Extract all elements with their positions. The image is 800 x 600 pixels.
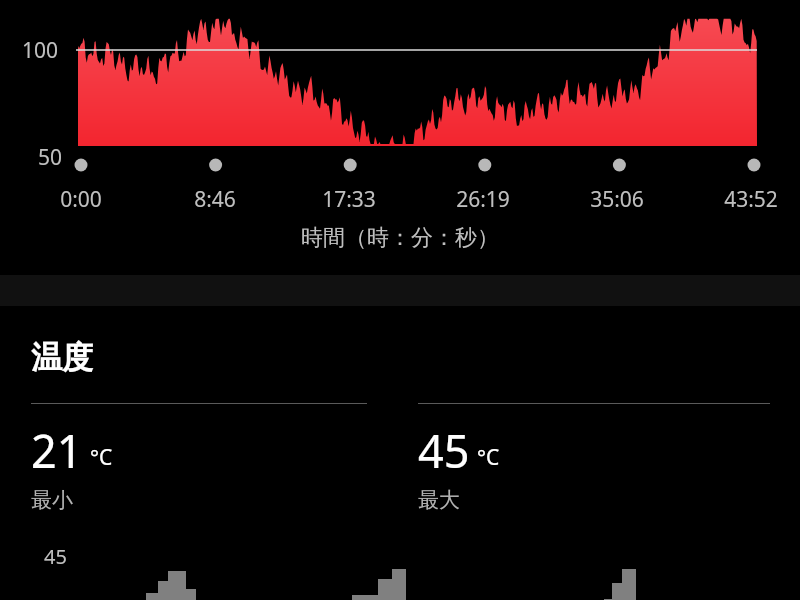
button[interactable]: 温度	[0, 338, 800, 377]
staticText: 50	[38, 143, 63, 172]
staticText: 43:52	[701, 185, 800, 214]
staticText: 45	[44, 543, 67, 570]
staticText: 0:00	[31, 185, 131, 214]
staticText: 温度	[31, 338, 93, 377]
staticText: °C	[90, 443, 113, 472]
staticText: 時間（時：分：秒）	[0, 224, 800, 252]
staticText: 最大	[418, 487, 460, 513]
staticText: 45	[418, 420, 470, 481]
staticText: 最小	[31, 487, 73, 513]
staticText: 100	[22, 36, 59, 65]
staticText: 26:19	[433, 185, 533, 214]
staticText: °C	[477, 443, 500, 472]
button[interactable]: 21	[31, 403, 367, 513]
button[interactable]: 45	[418, 403, 770, 513]
staticText: 35:06	[567, 185, 667, 214]
staticText: 8:46	[165, 185, 265, 214]
staticText: 21	[31, 420, 83, 481]
staticText: 17:33	[299, 185, 399, 214]
